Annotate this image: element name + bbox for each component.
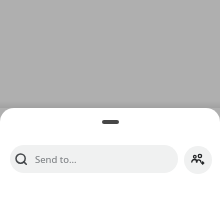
button[interactable]: Send to... bbox=[10, 145, 178, 173]
button[interactable] bbox=[102, 120, 119, 124]
button[interactable] bbox=[184, 146, 212, 174]
staticText: Send to... bbox=[35, 153, 77, 166]
